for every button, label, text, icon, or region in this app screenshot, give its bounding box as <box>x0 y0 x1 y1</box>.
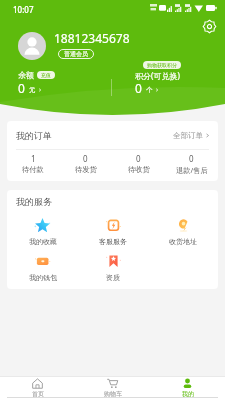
staticText: 我的服务 <box>16 196 52 207</box>
staticText: 余额 <box>18 70 34 80</box>
staticText: 待收货 <box>128 165 150 174</box>
staticText: 个 <box>146 86 153 94</box>
staticText: 待发货 <box>75 165 97 174</box>
button[interactable]: 购物车 <box>75 377 150 397</box>
button[interactable]: 我的钱包 <box>7 249 78 285</box>
staticText: 退款/售后 <box>176 165 208 175</box>
staticText: 首页 <box>32 390 44 397</box>
staticText: 待付款 <box>22 165 44 174</box>
staticText: 0 <box>136 153 141 164</box>
staticText: 0 <box>83 153 88 164</box>
staticText: 普通会员 <box>64 50 88 58</box>
button[interactable]: 0 <box>59 151 112 176</box>
staticText: 全部订单 <box>173 131 203 140</box>
button[interactable]: 余额 <box>18 56 118 96</box>
staticText: 1 <box>31 153 36 164</box>
button[interactable]: 我的收藏 <box>7 213 78 249</box>
button[interactable]: 0 <box>112 151 165 176</box>
staticText: 我的订单 <box>16 130 52 141</box>
staticText: 0 <box>135 80 142 96</box>
staticText: 积分(可兑换) <box>135 70 180 81</box>
staticText: 我的收藏 <box>29 237 57 246</box>
button[interactable]: 首页 <box>0 377 75 397</box>
staticText: 0 <box>18 80 25 96</box>
staticText: 客服服务 <box>99 237 127 246</box>
staticText: 资质 <box>106 273 120 282</box>
staticText: 我的钱包 <box>29 273 57 282</box>
button[interactable]: 收货地址 <box>148 213 218 249</box>
staticText: 充值 <box>41 72 51 78</box>
button[interactable]: 0 <box>165 151 218 176</box>
staticText: 0 <box>189 153 194 164</box>
button[interactable]: 资质 <box>78 249 148 285</box>
staticText: 购物车 <box>104 390 122 397</box>
button[interactable]: Settings <box>202 19 217 34</box>
staticText: 我的 <box>182 390 194 397</box>
button[interactable]: Avatar <box>18 32 46 60</box>
staticText: 10:07 <box>13 4 34 15</box>
staticText: 收货地址 <box>169 237 197 246</box>
button[interactable]: 购物获取积分 <box>135 56 225 96</box>
button[interactable]: 1 <box>7 151 59 176</box>
button[interactable]: 我的 <box>150 377 225 397</box>
button[interactable]: 普通会员 <box>64 50 88 58</box>
button[interactable]: 客服服务 <box>78 213 148 249</box>
button[interactable]: 全部订单 <box>173 131 210 140</box>
staticText: 18812345678 <box>54 30 130 46</box>
staticText: 元 <box>29 86 36 94</box>
staticText: 购物获取积分 <box>147 62 177 68</box>
